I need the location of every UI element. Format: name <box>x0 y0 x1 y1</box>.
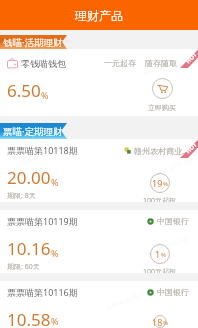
staticText: www.pc6.com <box>148 152 198 190</box>
staticText: 10.58 <box>7 308 51 328</box>
staticText: 1 <box>155 248 161 260</box>
staticText: 零钱喵钱包 <box>21 58 66 69</box>
staticText: 6.50 <box>7 79 41 102</box>
staticText: % <box>51 315 59 327</box>
button[interactable]: 票票喵第10118期 <box>0 139 198 202</box>
staticText: 中国银行 <box>157 287 189 297</box>
staticText: 期限: 60天 <box>7 262 40 272</box>
staticText: www.pc6.com <box>144 229 198 269</box>
staticText: www.pc6.com <box>20 34 73 65</box>
staticText: 赣州农村商业... <box>134 145 189 156</box>
staticText: 票票喵第10119期 <box>7 215 78 227</box>
staticText: % <box>161 251 166 259</box>
staticText: 票票喵第10118期 <box>7 144 78 156</box>
staticText: % <box>41 89 49 101</box>
staticText: 期限: 8天 <box>7 191 36 201</box>
staticText: 钱喵·活期理财 <box>3 36 63 49</box>
staticText: 19 <box>152 177 163 189</box>
staticText: % <box>51 176 59 188</box>
staticText: 100元起投 <box>143 267 177 273</box>
staticText: 理财产品 <box>75 8 123 23</box>
staticText: 10.16 <box>7 237 51 260</box>
staticText: 20.00 <box>7 166 51 189</box>
staticText: 随存随取 <box>145 58 177 68</box>
staticText: 票喵·定期理财 <box>3 125 63 138</box>
staticText: www.pc6.com <box>104 282 157 313</box>
button[interactable]: 零钱喵钱包 <box>0 49 198 116</box>
staticText: www.pc6.com <box>12 140 65 171</box>
staticText: % <box>163 319 168 327</box>
staticText: HOT <box>184 141 198 155</box>
button[interactable]: 立即购买 <box>148 78 176 112</box>
staticText: 18 <box>152 316 163 328</box>
button[interactable]: 票票喵第10119期 <box>0 210 198 273</box>
button[interactable]: 票票喵第10116期 <box>0 281 198 328</box>
staticText: HOT <box>184 51 198 65</box>
staticText: % <box>163 180 168 188</box>
staticText: 中国银行 <box>157 216 189 226</box>
staticText: 一元起存 <box>104 58 136 68</box>
staticText: 立即购买 <box>148 103 176 112</box>
staticText: www.pc6.com <box>140 48 193 79</box>
staticText: 100元起投 <box>143 196 177 202</box>
staticText: % <box>51 247 59 259</box>
staticText: 票票喵第10116期 <box>7 286 78 298</box>
